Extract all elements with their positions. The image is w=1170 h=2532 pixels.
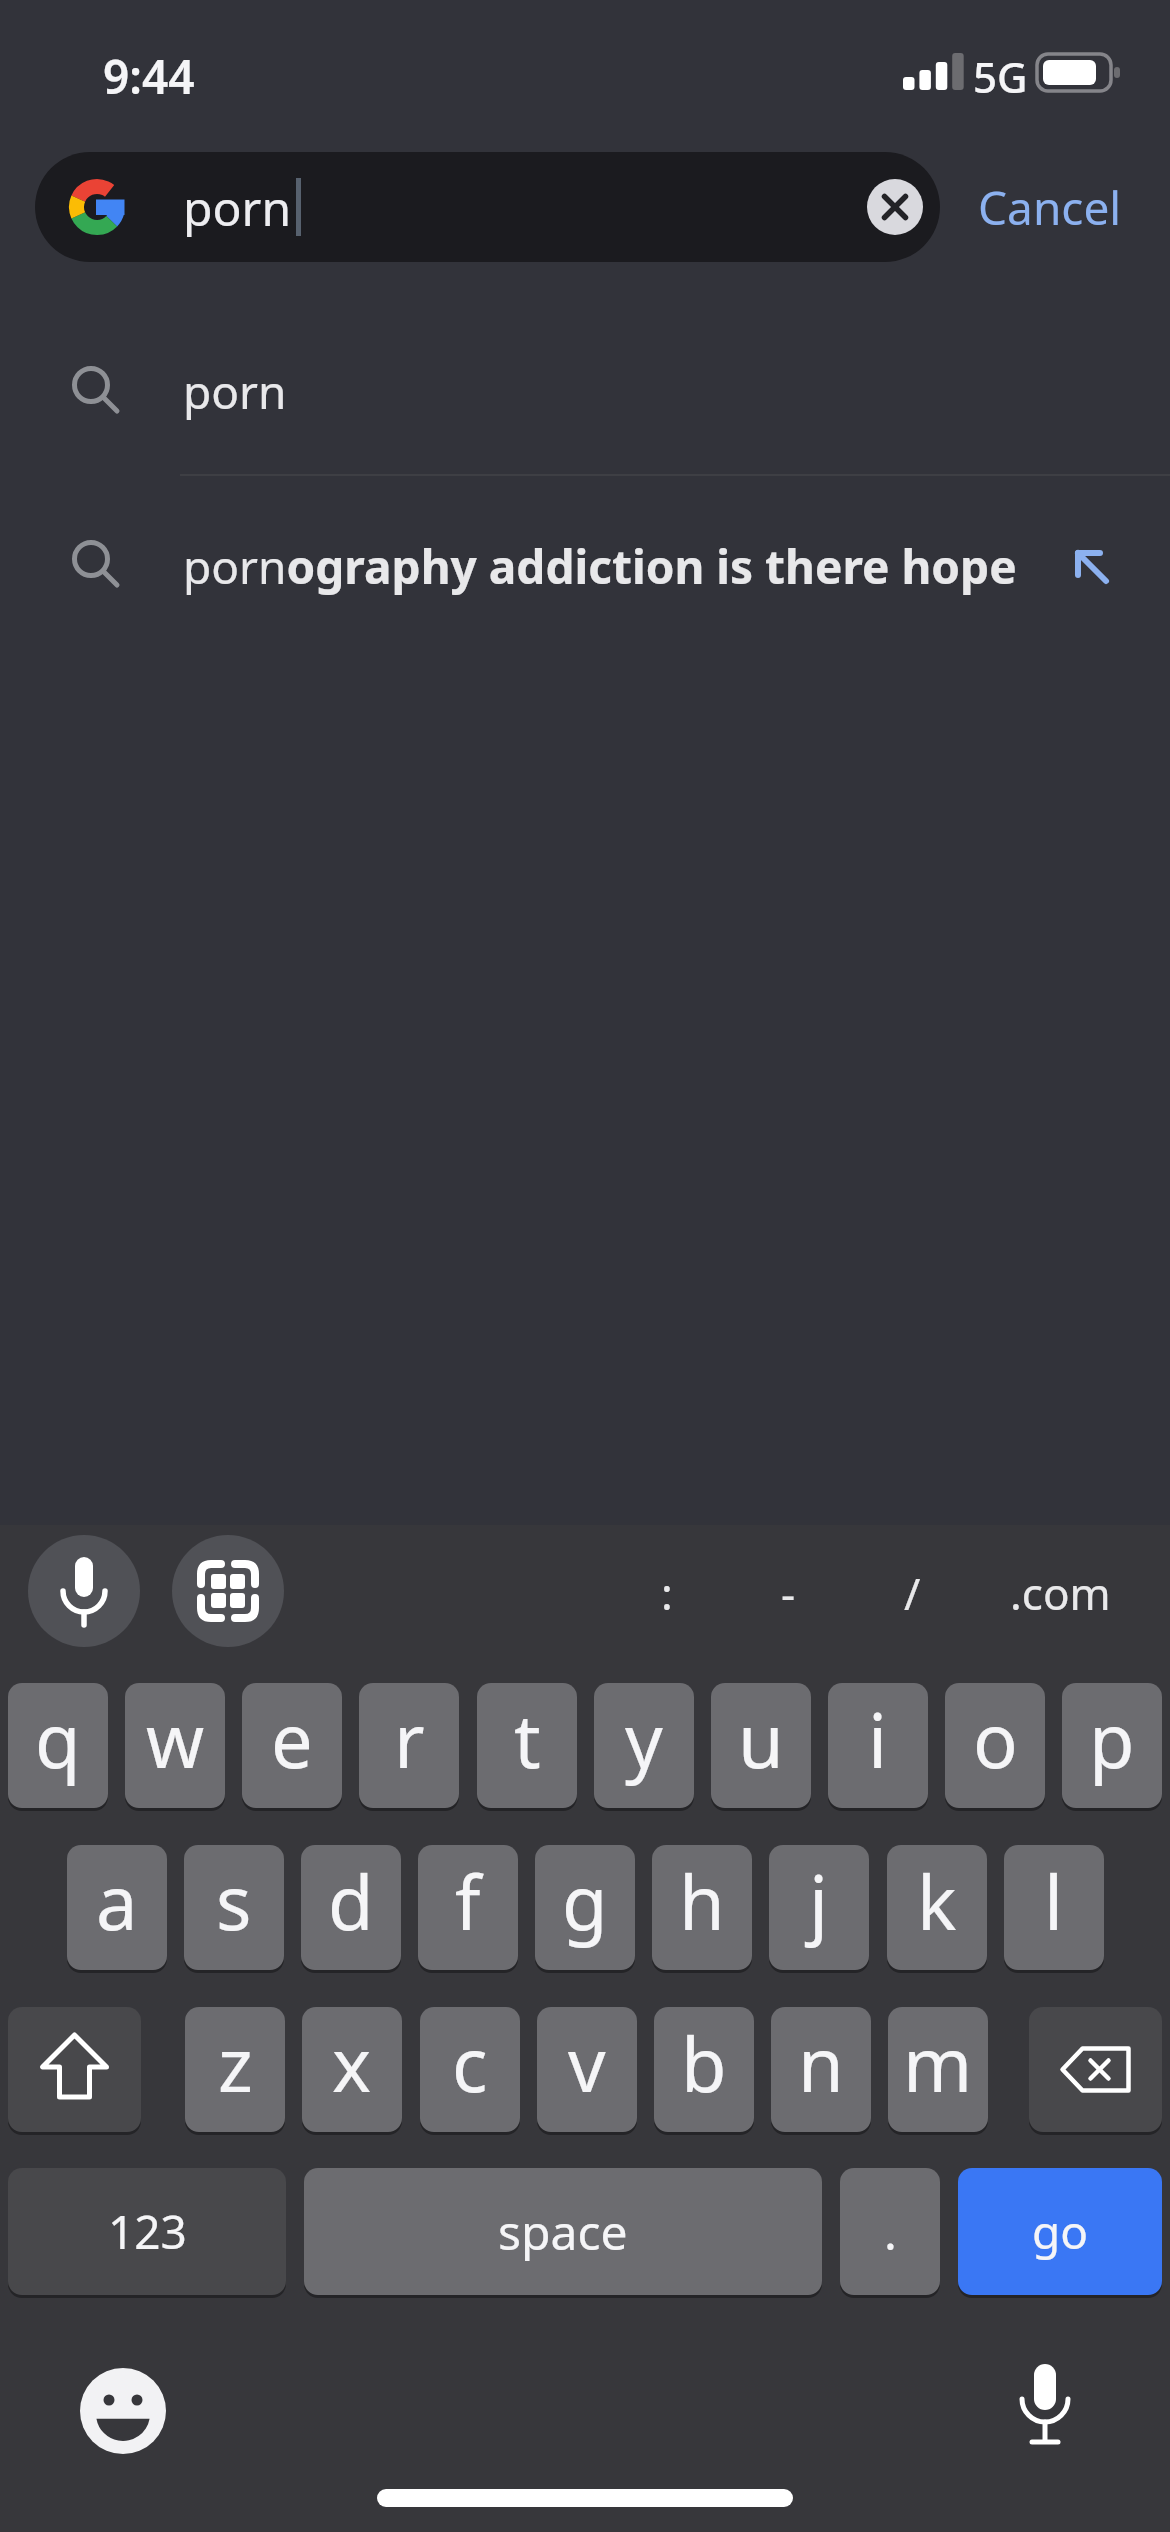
staticText: . (884, 2199, 897, 2264)
staticText: e (271, 1689, 313, 1790)
staticText: porn (183, 360, 287, 423)
button[interactable]: d (301, 1845, 401, 1970)
button[interactable]: y (594, 1683, 694, 1808)
button[interactable]: / (862, 1537, 962, 1649)
button[interactable]: w (125, 1683, 225, 1808)
button[interactable]: z (185, 2007, 285, 2132)
staticText: o (973, 1689, 1018, 1790)
button[interactable]: j (769, 1845, 869, 1970)
button[interactable]: pornography addiction is there hope (0, 505, 1170, 623)
staticText: m (903, 2013, 973, 2114)
button[interactable]: : (617, 1537, 717, 1649)
staticText: 5G (973, 48, 1028, 105)
button[interactable]: i (828, 1683, 928, 1808)
staticText: - (781, 1563, 796, 1623)
staticText: a (96, 1851, 138, 1952)
staticText: n (798, 2013, 844, 2114)
button[interactable]: c (420, 2007, 520, 2132)
button[interactable]: b (654, 2007, 754, 2132)
staticText: p (1089, 1689, 1135, 1790)
staticText: j (809, 1851, 829, 1952)
staticText: k (917, 1851, 957, 1952)
button[interactable]: l (1004, 1845, 1104, 1970)
staticText: w (146, 1689, 205, 1790)
staticText: / (904, 1563, 921, 1623)
staticText: 123 (108, 2200, 187, 2263)
button[interactable]: Cancel (955, 160, 1145, 255)
staticText: go (1032, 2200, 1089, 2263)
staticText: g (562, 1851, 608, 1952)
button[interactable] (1002, 2356, 1088, 2460)
staticText: Cancel (978, 176, 1122, 239)
button[interactable]: n (771, 2007, 871, 2132)
staticText: pornography addiction is there hope (183, 535, 1017, 598)
staticText: v (568, 2013, 606, 2114)
staticText: l (1044, 1851, 1064, 1952)
staticText: b (681, 2013, 727, 2114)
button[interactable]: h (652, 1845, 752, 1970)
staticText: i (868, 1689, 888, 1790)
button[interactable]: o (945, 1683, 1045, 1808)
button[interactable]: r (359, 1683, 459, 1808)
button[interactable]: x (302, 2007, 402, 2132)
staticText: porn (183, 175, 292, 240)
button[interactable] (172, 1535, 284, 1647)
button[interactable] (867, 179, 923, 235)
button[interactable]: f (418, 1845, 518, 1970)
button[interactable]: - (738, 1537, 838, 1649)
button[interactable]: k (887, 1845, 987, 1970)
button[interactable] (8, 2007, 141, 2132)
button[interactable] (28, 1535, 140, 1647)
button[interactable]: 123 (8, 2168, 286, 2295)
staticText: h (679, 1851, 725, 1952)
staticText: x (332, 2013, 372, 2114)
button[interactable]: m (888, 2007, 988, 2132)
button[interactable] (78, 2366, 168, 2456)
button[interactable]: space (304, 2168, 822, 2295)
button[interactable]: .com (985, 1537, 1135, 1649)
staticText: f (455, 1851, 481, 1952)
button[interactable] (1029, 2007, 1162, 2132)
staticText: q (35, 1689, 81, 1790)
staticText: c (452, 2013, 488, 2114)
staticText: z (218, 2013, 253, 2114)
staticText: u (738, 1689, 784, 1790)
button[interactable]: s (184, 1845, 284, 1970)
staticText: d (328, 1851, 374, 1952)
button[interactable]: porn (0, 332, 1170, 444)
button[interactable]: e (242, 1683, 342, 1808)
staticText: 9:44 (103, 45, 195, 108)
button[interactable]: p (1062, 1683, 1162, 1808)
button[interactable]: u (711, 1683, 811, 1808)
button[interactable]: porn (35, 152, 940, 262)
button[interactable]: q (8, 1683, 108, 1808)
button[interactable]: go (958, 2168, 1162, 2295)
button[interactable]: g (535, 1845, 635, 1970)
staticText: s (216, 1851, 252, 1952)
staticText: .com (1010, 1563, 1111, 1623)
staticText: space (498, 2199, 628, 2264)
staticText: y (625, 1689, 663, 1790)
staticText: : (661, 1563, 673, 1623)
button[interactable]: t (477, 1683, 577, 1808)
staticText: t (514, 1689, 541, 1790)
button[interactable]: v (537, 2007, 637, 2132)
button[interactable]: . (840, 2168, 940, 2295)
button[interactable]: a (67, 1845, 167, 1970)
staticText: r (394, 1689, 425, 1790)
